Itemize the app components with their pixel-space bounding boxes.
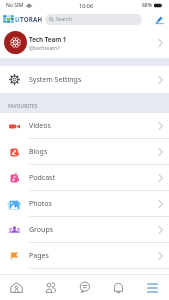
button[interactable]: Home bbox=[0, 275, 33, 300]
button[interactable]: Podcast bbox=[0, 165, 169, 191]
button[interactable]: Blogs bbox=[0, 139, 169, 165]
staticText: Search bbox=[56, 16, 72, 23]
button[interactable]: Friends bbox=[33, 275, 67, 300]
staticText: Tech Team 1 bbox=[29, 35, 67, 43]
button[interactable]: Compose post bbox=[152, 12, 166, 26]
staticText: @techteam1 bbox=[29, 44, 61, 51]
button[interactable]: Notifications bbox=[101, 275, 135, 300]
staticText: 88% bbox=[142, 2, 152, 9]
staticText: Pages bbox=[29, 251, 49, 261]
staticText: FAVOURITES bbox=[8, 103, 38, 109]
staticText: No SIM bbox=[6, 2, 24, 9]
button[interactable]: Photos bbox=[0, 191, 169, 217]
button[interactable]: Tech Team 1 bbox=[0, 27, 169, 58]
staticText: Videos bbox=[29, 121, 51, 131]
staticText: Groups bbox=[29, 225, 54, 235]
button[interactable]: Videos bbox=[0, 113, 169, 139]
staticText: System Settings bbox=[29, 75, 82, 85]
staticText: Photos bbox=[29, 199, 52, 209]
staticText: Blogs bbox=[29, 147, 48, 157]
staticText: 10:06 bbox=[79, 2, 94, 9]
staticText: TORAH bbox=[20, 15, 43, 23]
button[interactable]: Menu bbox=[135, 275, 169, 300]
staticText: U bbox=[15, 15, 20, 23]
button[interactable]: Search bbox=[45, 14, 142, 25]
button[interactable]: Pages bbox=[0, 243, 169, 269]
button[interactable]: Messages bbox=[67, 275, 101, 300]
button[interactable]: Groups bbox=[0, 217, 169, 243]
button[interactable]: System Settings bbox=[0, 66, 169, 93]
staticText: Podcast bbox=[29, 173, 55, 183]
